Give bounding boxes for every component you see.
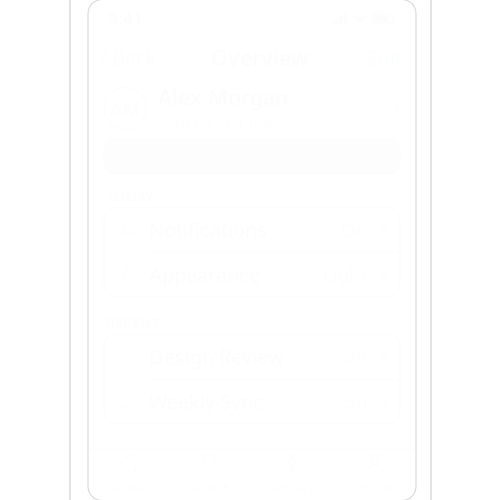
button[interactable]: Profile xyxy=(334,448,416,500)
button[interactable]: Home xyxy=(88,448,170,500)
